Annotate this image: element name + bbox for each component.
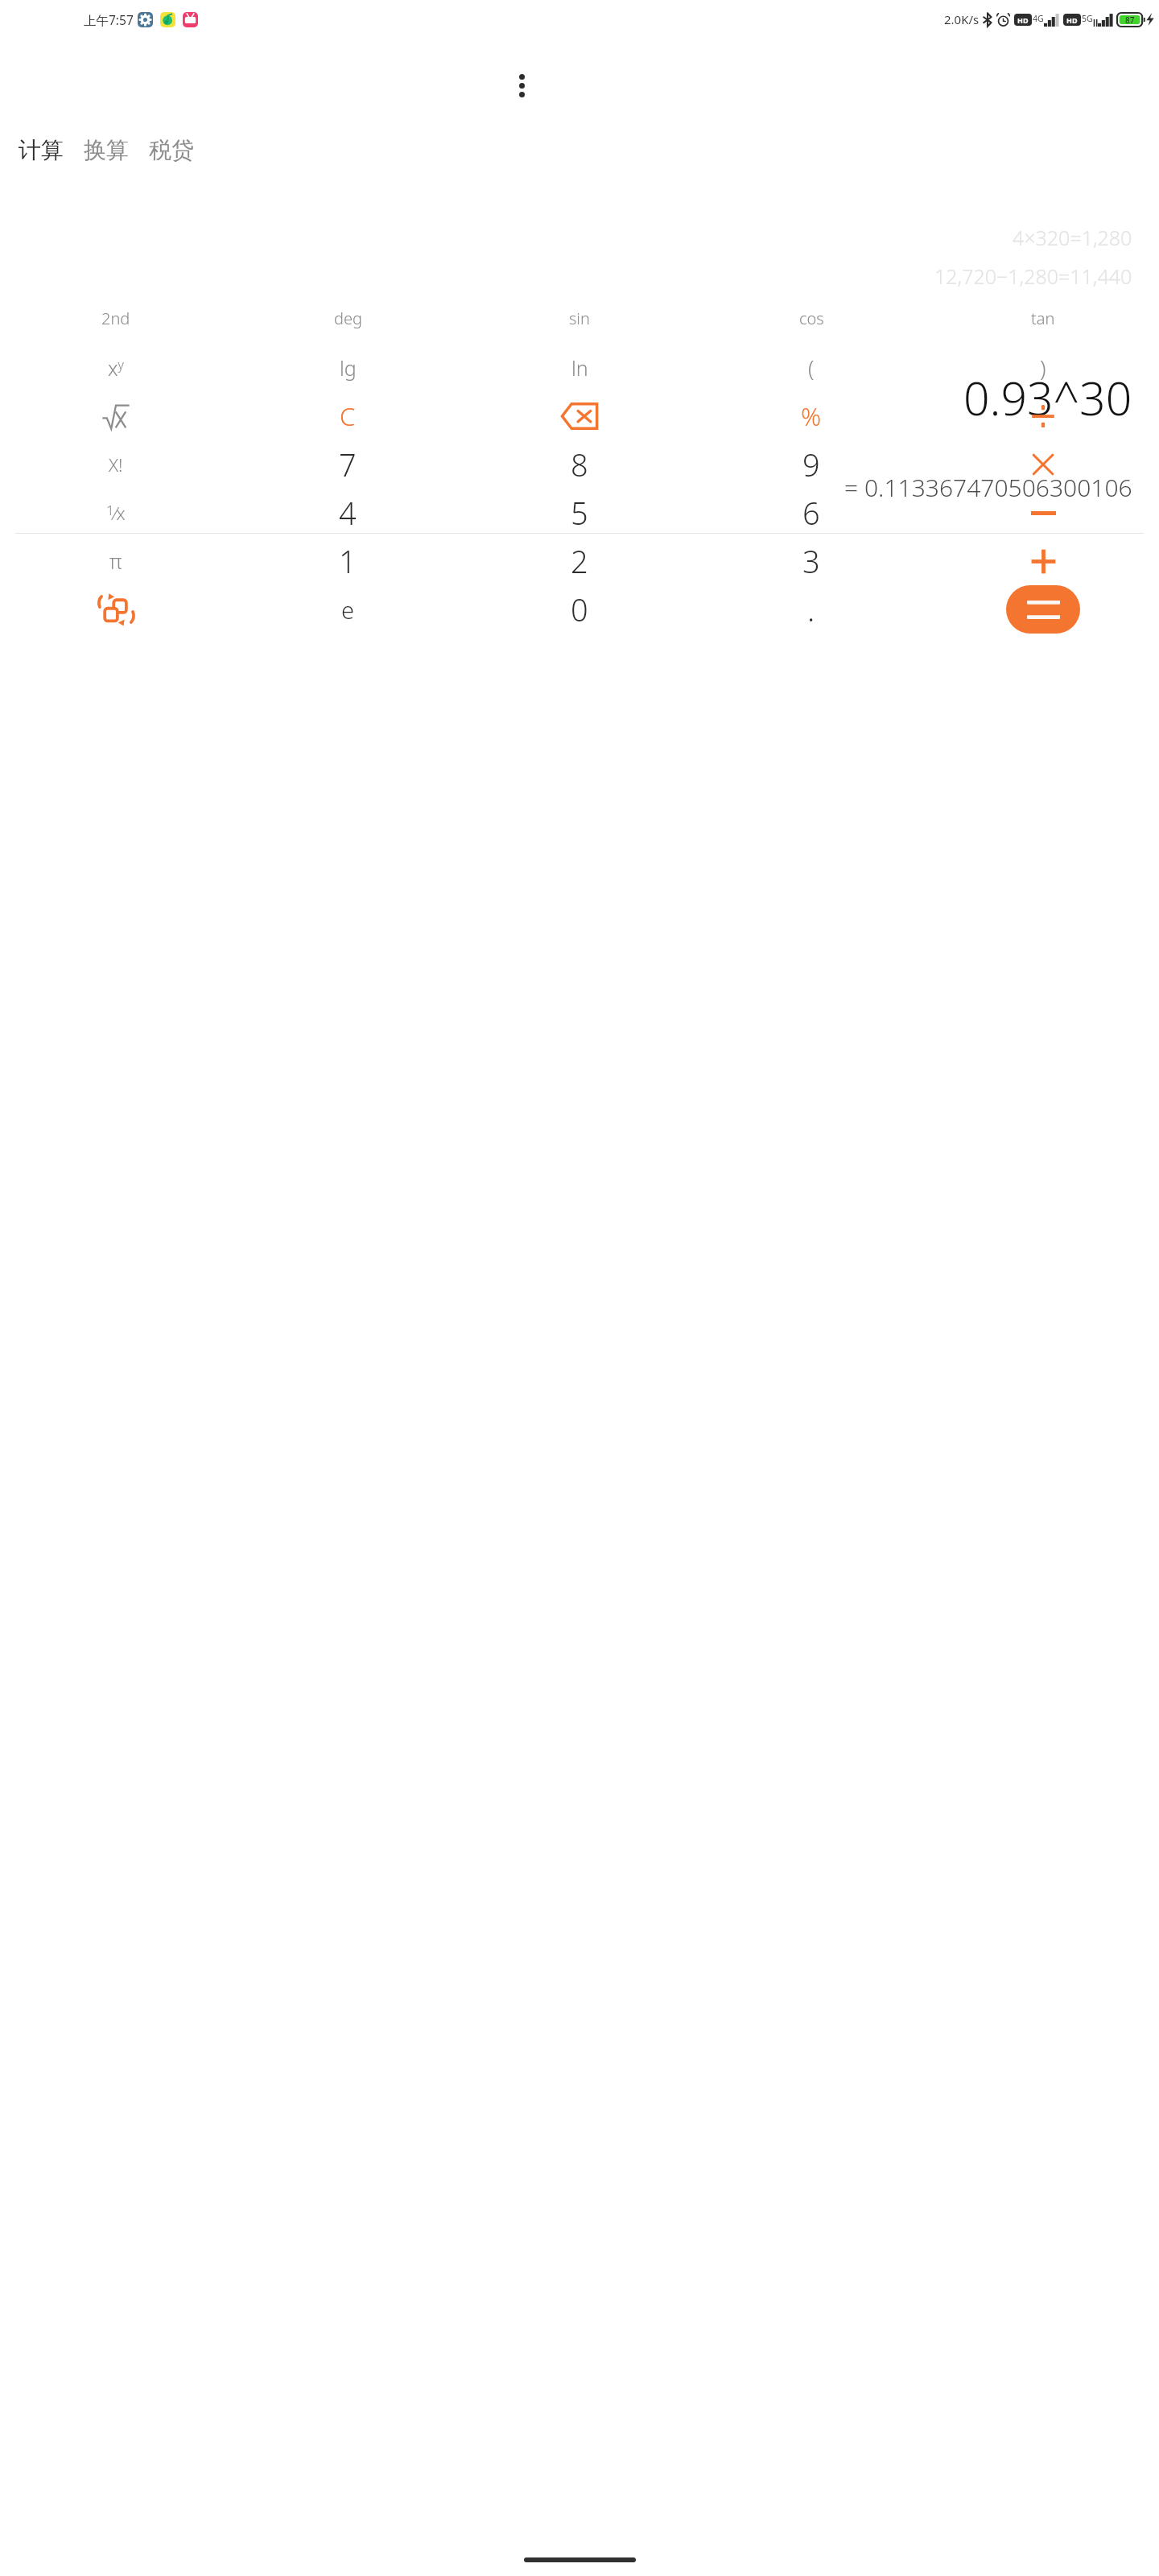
button[interactable]: π [0, 537, 232, 585]
staticText: 0 [571, 588, 588, 630]
button[interactable]: 7 [232, 440, 464, 489]
button[interactable]: sin [464, 294, 695, 342]
staticText: sin [569, 308, 590, 329]
button[interactable]: tan [927, 294, 1159, 342]
staticText: X! [109, 452, 123, 477]
button[interactable]: 换算 [79, 133, 134, 167]
button[interactable]: ln [464, 344, 695, 392]
staticText: 1 [339, 540, 357, 582]
staticText: 税贷 [149, 136, 194, 164]
button[interactable]: 0 [464, 585, 695, 634]
staticText: π [109, 547, 122, 575]
staticText: tan [1031, 308, 1055, 329]
button[interactable]: 3 [695, 537, 927, 585]
button[interactable]: 6 [695, 489, 927, 537]
button[interactable]: 2nd [0, 294, 232, 342]
button[interactable]: Minus [927, 489, 1159, 537]
staticText: 上午7:57 [84, 11, 134, 28]
button[interactable]: 计算 [14, 133, 68, 167]
staticText: . [807, 588, 815, 630]
button[interactable]: 2 [464, 537, 695, 585]
button[interactable]: Multiply [927, 440, 1159, 489]
button[interactable]: ( [695, 344, 927, 392]
staticText: HD [1017, 15, 1029, 25]
button[interactable]: cos [695, 294, 927, 342]
button[interactable]: Divide [927, 392, 1159, 440]
staticText: 5G [1082, 13, 1093, 24]
button[interactable]: Backspace [464, 392, 695, 440]
button[interactable]: Square root [0, 392, 232, 440]
button[interactable]: Plus [927, 537, 1159, 585]
staticText: lg [340, 354, 357, 382]
staticText: 7 [339, 444, 357, 485]
staticText: 计算 [19, 136, 64, 164]
button[interactable]: Unit conversion [0, 585, 232, 634]
button[interactable]: 8 [464, 440, 695, 489]
button[interactable]: 9 [695, 440, 927, 489]
staticText: ln [571, 354, 588, 382]
staticText: ) [1040, 353, 1046, 383]
button[interactable]: 4 [232, 489, 464, 537]
button[interactable]: deg [232, 294, 464, 342]
staticText: % [801, 399, 822, 433]
staticText: cos [799, 308, 824, 329]
staticText: 87 [1125, 14, 1135, 26]
staticText: 换算 [84, 136, 129, 164]
staticText: 4 [339, 492, 357, 534]
button[interactable]: 税贷 [144, 133, 199, 167]
staticText: 3 [802, 540, 820, 582]
staticText: = 0.113367470506300106 [844, 471, 1132, 504]
staticText: 4G [1033, 13, 1044, 24]
button[interactable]: 1 [232, 537, 464, 585]
staticText: 8 [571, 444, 588, 485]
staticText: ( [808, 353, 815, 383]
button[interactable]: e [232, 585, 464, 634]
button[interactable]: % [695, 392, 927, 440]
staticText: 5 [571, 492, 588, 534]
staticText: 1⁄x [106, 501, 126, 526]
staticText: 9 [802, 444, 820, 485]
button[interactable]: 1⁄x [0, 489, 232, 537]
button[interactable]: lg [232, 344, 464, 392]
button[interactable]: C [232, 392, 464, 440]
staticText: 0.93^30 [963, 366, 1132, 429]
button[interactable]: ) [927, 344, 1159, 392]
staticText: deg [334, 308, 362, 329]
staticText: 2nd [101, 308, 130, 329]
staticText: e [341, 594, 355, 625]
staticText: 12,720−1,280=11,440 [934, 262, 1132, 290]
staticText: xy [108, 354, 124, 382]
button[interactable]: Equals [927, 585, 1159, 634]
button[interactable]: 5 [464, 489, 695, 537]
button[interactable]: xy [0, 344, 232, 392]
staticText: 2.0K/s [944, 11, 980, 27]
staticText: 6 [802, 492, 820, 534]
button[interactable]: X! [0, 440, 232, 489]
staticText: C [340, 399, 356, 433]
button[interactable]: More options [502, 66, 541, 105]
staticText: 4×320=1,280 [1013, 224, 1132, 251]
button[interactable]: . [695, 585, 927, 634]
staticText: 2 [571, 540, 588, 582]
staticText: HD [1066, 15, 1078, 25]
